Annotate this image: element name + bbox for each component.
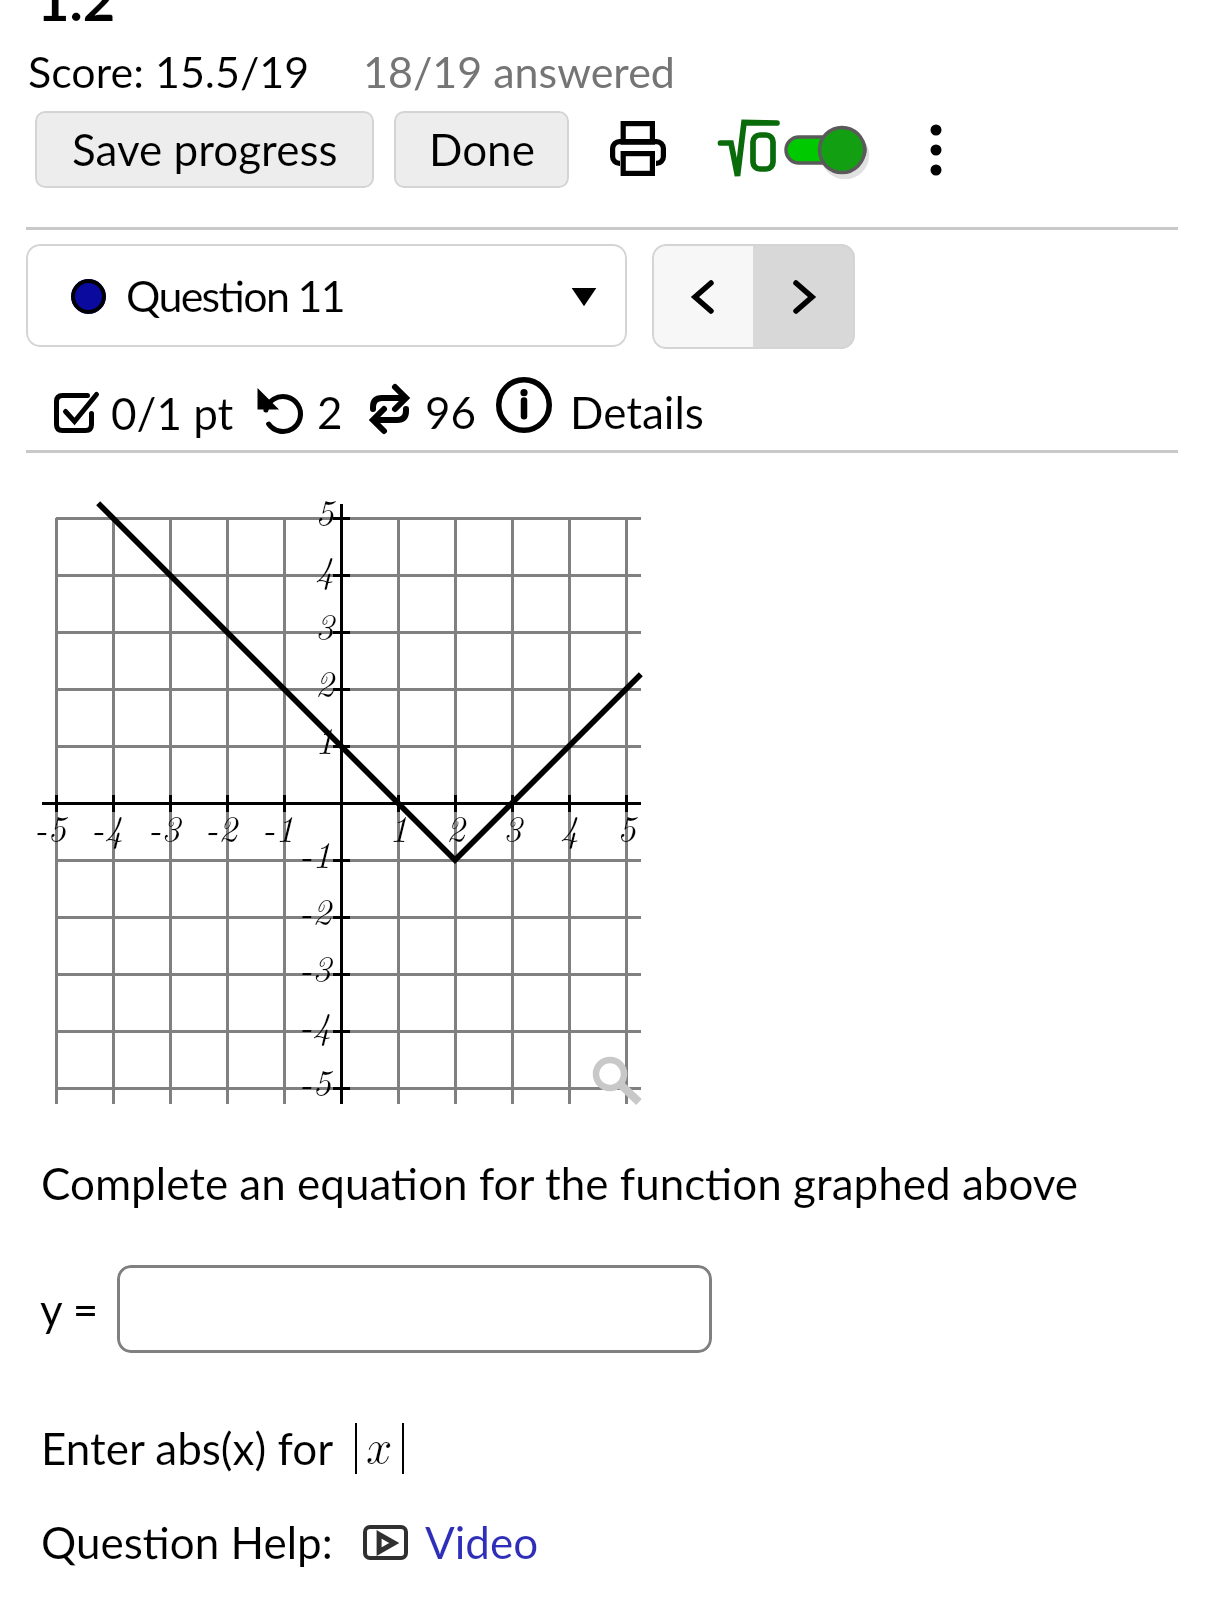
staticText: 3 — [315, 598, 334, 650]
staticText: 1.2 — [37, 0, 116, 33]
staticText: -1 — [262, 800, 295, 852]
staticText: y = — [40, 1283, 99, 1336]
button[interactable]: Previous question — [652, 244, 753, 349]
staticText: 2 — [446, 800, 465, 852]
staticText: Question 11 — [126, 270, 344, 322]
staticText: 96 — [425, 386, 477, 439]
staticText: Details — [570, 386, 704, 439]
button[interactable]: Toggle math display — [720, 121, 870, 179]
staticText: 5 — [315, 484, 334, 536]
button[interactable]: Question 11 — [26, 244, 627, 347]
staticText: 1 — [389, 800, 408, 852]
staticText: Question Help: — [41, 1516, 333, 1569]
staticText: Score: 15.5/19 — [28, 46, 310, 98]
button[interactable]: Done — [394, 111, 569, 188]
staticText: 2 — [315, 655, 334, 707]
button[interactable]: Print — [610, 121, 668, 179]
staticText: Video — [425, 1516, 539, 1569]
staticText: 𝑥 — [366, 1426, 393, 1472]
staticText: 3 — [503, 800, 522, 852]
staticText: 5 — [617, 800, 636, 852]
staticText: -5 — [34, 800, 67, 852]
staticText: 0/1 pt — [111, 387, 234, 440]
staticText: Save progress — [72, 123, 338, 176]
button[interactable]: Save progress — [35, 111, 374, 188]
staticText: -3 — [148, 800, 181, 852]
staticText: 4 — [315, 541, 334, 593]
staticText: -4 — [91, 800, 124, 852]
staticText: Enter abs(x) for — [41, 1422, 334, 1475]
staticText: Complete an equation for the function gr… — [41, 1157, 1079, 1210]
staticText: -4 — [299, 997, 332, 1049]
staticText: 2 — [317, 386, 343, 439]
staticText: -2 — [205, 800, 238, 852]
staticText: 4 — [560, 800, 579, 852]
staticText: 18/19 answered — [363, 46, 675, 98]
staticText: Done — [429, 123, 535, 176]
staticText: -1 — [299, 826, 332, 878]
staticText: -5 — [299, 1054, 332, 1106]
button[interactable]: Video — [363, 1516, 539, 1569]
staticText: 1 — [315, 712, 334, 764]
button[interactable]: Answer input — [117, 1265, 712, 1353]
button[interactable]: Next question — [753, 244, 855, 349]
staticText: -2 — [299, 883, 332, 935]
button[interactable]: More options — [916, 121, 956, 179]
staticText: -3 — [299, 940, 332, 992]
